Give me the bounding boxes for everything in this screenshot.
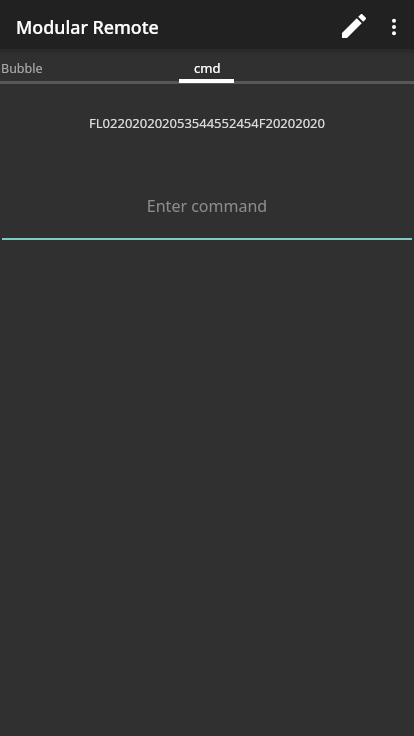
- button[interactable]: Edit: [332, 4, 376, 48]
- staticText: Bubble: [1, 60, 43, 77]
- button[interactable]: More options: [374, 7, 414, 47]
- button[interactable]: cmd: [179, 49, 235, 85]
- staticText: Enter command: [0, 195, 414, 217]
- button[interactable]: Enter command: [0, 180, 414, 244]
- staticText: cmd: [194, 59, 221, 77]
- staticText: FL022020202053544552454F20202020: [0, 114, 414, 132]
- staticText: Modular Remote: [16, 15, 159, 39]
- button[interactable]: Bubble: [0, 49, 60, 85]
